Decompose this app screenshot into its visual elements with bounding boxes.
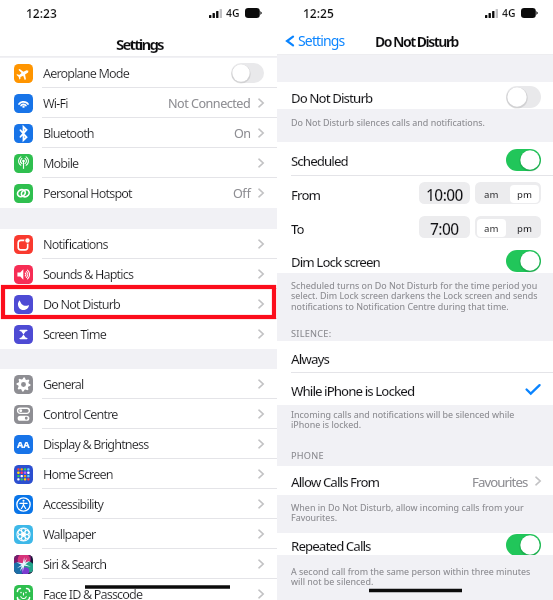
- button[interactable]: Face ID & Passcode: [0, 579, 277, 600]
- staticText: To: [291, 220, 419, 238]
- staticText: Face ID & Passcode: [43, 586, 258, 600]
- button[interactable]: Notifications: [0, 229, 277, 259]
- staticText: pm: [517, 188, 532, 201]
- button[interactable]: 7:00: [419, 217, 470, 238]
- button[interactable]: AA: [0, 429, 277, 459]
- staticText: Home Screen: [43, 466, 258, 483]
- staticText: 7:00: [430, 218, 459, 238]
- staticText: Always: [291, 350, 540, 368]
- button[interactable]: Bluetooth: [0, 118, 277, 148]
- button[interactable]: From: [277, 176, 553, 210]
- staticText: Wi-Fi: [43, 95, 168, 112]
- staticText: am: [484, 188, 499, 201]
- staticText: Wallpaper: [43, 526, 258, 543]
- staticText: Sounds & Haptics: [43, 266, 258, 283]
- staticText: Repeated Calls: [291, 537, 506, 555]
- staticText: Scheduled: [291, 152, 506, 170]
- staticText: Incoming calls and notifications will be…: [291, 408, 542, 431]
- button[interactable]: Mobile: [0, 148, 277, 178]
- button[interactable]: Sounds & Haptics: [0, 259, 277, 289]
- staticText: Personal Hotspot: [43, 185, 233, 202]
- staticText: Screen Time: [43, 326, 258, 343]
- staticText: Control Centre: [43, 406, 258, 423]
- staticText: Allow Calls From: [291, 473, 472, 491]
- staticText: Off: [233, 185, 251, 202]
- button[interactable]: Allow Calls From: [277, 466, 553, 495]
- button[interactable]: Back: [286, 31, 345, 50]
- button[interactable]: Wi-Fi: [0, 88, 277, 118]
- button[interactable]: Scheduled: [277, 142, 553, 176]
- staticText: 4G: [502, 6, 516, 20]
- staticText: 10:00: [426, 184, 463, 204]
- staticText: Favourites: [472, 473, 528, 491]
- staticText: Accessibility: [43, 496, 258, 513]
- staticText: Siri & Search: [43, 556, 258, 573]
- button[interactable]: am: [477, 185, 506, 203]
- button[interactable]: Aeroplane Mode: [0, 58, 277, 88]
- staticText: pm: [517, 222, 532, 235]
- button[interactable]: Screen Time: [0, 319, 277, 349]
- staticText: From: [291, 186, 419, 204]
- staticText: Do Not Disturb: [43, 296, 258, 313]
- button[interactable]: Home Screen: [0, 459, 277, 489]
- button[interactable]: pm: [510, 219, 539, 237]
- staticText: PHONE: [291, 449, 324, 462]
- staticText: Do Not Disturb silences calls and notifi…: [291, 116, 542, 128]
- button[interactable]: Accessibility: [0, 489, 277, 519]
- button[interactable]: Do Not Disturb: [0, 289, 277, 319]
- staticText: Dim Lock screen: [291, 253, 506, 271]
- staticText: 12:25: [303, 5, 334, 21]
- staticText: Mobile: [43, 155, 258, 172]
- staticText: On: [234, 125, 251, 142]
- staticText: While iPhone is Locked: [291, 382, 526, 400]
- staticText: Do Not Disturb: [291, 89, 506, 107]
- button[interactable]: Always: [277, 341, 553, 373]
- staticText: Settings: [298, 31, 345, 50]
- staticText: 12:23: [26, 5, 57, 21]
- button[interactable]: Control Centre: [0, 399, 277, 429]
- staticText: SILENCE:: [291, 327, 332, 340]
- staticText: Settings: [116, 34, 163, 54]
- staticText: Not Connected: [168, 95, 251, 112]
- staticText: am: [484, 222, 499, 235]
- button[interactable]: Siri & Search: [0, 549, 277, 579]
- staticText: Do Not Disturb: [375, 32, 458, 51]
- staticText: Scheduled turns on Do Not Disturb for th…: [291, 279, 542, 313]
- staticText: AA: [17, 438, 30, 451]
- staticText: When in Do Not Disturb, allow incoming c…: [291, 501, 542, 524]
- staticText: Aeroplane Mode: [43, 65, 231, 82]
- button[interactable]: Personal Hotspot: [0, 178, 277, 208]
- button[interactable]: General: [0, 369, 277, 399]
- staticText: General: [43, 376, 258, 393]
- staticText: Bluetooth: [43, 125, 234, 142]
- button[interactable]: While iPhone is Locked: [277, 373, 553, 405]
- button[interactable]: 10:00: [419, 183, 470, 204]
- button[interactable]: am: [477, 219, 506, 237]
- button[interactable]: Wallpaper: [0, 519, 277, 549]
- staticText: A second call from the same person withi…: [291, 565, 542, 588]
- button[interactable]: Do Not Disturb: [277, 82, 553, 109]
- button[interactable]: Repeated Calls: [277, 533, 553, 555]
- button[interactable]: Dim Lock screen: [277, 244, 553, 275]
- staticText: Display & Brightness: [43, 436, 258, 453]
- staticText: 4G: [226, 6, 240, 20]
- button[interactable]: To: [277, 210, 553, 244]
- other: Back: [286, 34, 294, 48]
- button[interactable]: pm: [510, 185, 539, 203]
- staticText: Notifications: [43, 236, 258, 253]
